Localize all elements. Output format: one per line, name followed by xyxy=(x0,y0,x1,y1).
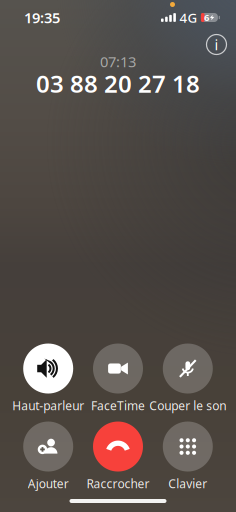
button[interactable]: Ajouter xyxy=(13,423,83,490)
button[interactable]: Clavier xyxy=(153,423,223,490)
button[interactable]: Couper le son xyxy=(153,345,223,412)
staticText: Haut-parleur xyxy=(12,397,84,413)
button[interactable]: Raccrocher xyxy=(83,423,153,490)
staticText: Couper le son xyxy=(149,397,226,413)
staticText: i xyxy=(214,35,218,54)
staticText: Ajouter xyxy=(28,475,69,491)
staticText: 03 88 20 27 18 xyxy=(36,68,200,99)
staticText: 6 xyxy=(204,11,209,24)
staticText: Raccrocher xyxy=(86,475,149,491)
staticText: 19:35 xyxy=(24,8,60,27)
staticText: Clavier xyxy=(168,475,207,491)
staticText: FaceTime xyxy=(91,397,145,413)
button[interactable]: Haut-parleur xyxy=(13,345,83,412)
staticText: 07:13 xyxy=(100,52,136,71)
button[interactable]: Informations sur l'appel xyxy=(202,30,231,59)
button[interactable]: FaceTime xyxy=(83,345,153,412)
staticText: 4G xyxy=(179,9,197,26)
